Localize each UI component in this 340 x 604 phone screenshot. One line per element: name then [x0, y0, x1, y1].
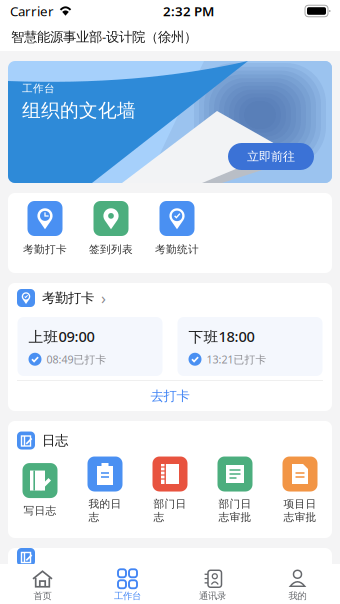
staticText: 工作台 — [114, 590, 141, 602]
button[interactable]: 签到列表 — [78, 201, 144, 256]
button[interactable]: 考勤打卡 — [8, 283, 332, 313]
staticText: 08:49已打卡 — [46, 352, 106, 366]
button[interactable]: 考勤统计 — [144, 201, 210, 256]
staticText: 我的 — [288, 590, 306, 602]
button[interactable]: 我的日志 — [72, 456, 137, 524]
staticText: 立即前往 — [247, 149, 295, 164]
staticText: 我的日志 — [88, 497, 121, 524]
staticText: 考勤统计 — [155, 243, 199, 256]
staticText: 考勤打卡 — [42, 290, 94, 306]
staticText: 签到列表 — [89, 243, 133, 256]
staticText: 上班09:00 — [28, 327, 94, 346]
staticText: 首页 — [33, 590, 51, 602]
staticText: 智慧能源事业部-设计院（徐州） — [11, 28, 197, 45]
button[interactable]: 通讯录 — [170, 566, 255, 602]
staticText: 工作台 — [22, 82, 55, 95]
button[interactable]: 考勤打卡 — [12, 201, 78, 256]
staticText: 项目日志审批 — [283, 497, 316, 524]
button[interactable]: 部门日志 — [137, 456, 202, 524]
staticText: 去打卡 — [150, 388, 189, 404]
staticText: › — [101, 287, 106, 309]
button[interactable]: 去打卡 — [8, 381, 332, 411]
button[interactable]: 部门日志审批 — [202, 456, 267, 524]
staticText: Carrier — [10, 2, 54, 20]
staticText: 13:21已打卡 — [206, 352, 266, 366]
button[interactable]: 首页 — [0, 566, 85, 602]
staticText: 2:32 PM — [163, 2, 214, 20]
staticText: 下班18:00 — [188, 327, 254, 346]
button[interactable]: 工作台 — [85, 566, 170, 602]
staticText: 考勤打卡 — [23, 243, 67, 256]
button[interactable]: 我的 — [255, 566, 340, 602]
button[interactable]: 写日志 — [7, 463, 72, 517]
staticText: 部门日志 — [153, 497, 186, 524]
button[interactable]: 立即前往 — [228, 143, 314, 170]
staticText: 日志 — [42, 432, 68, 449]
button[interactable]: 项目日志审批 — [267, 456, 332, 524]
staticText: 写日志 — [23, 504, 56, 517]
staticText: 通讯录 — [199, 590, 226, 602]
staticText: 组织的文化墙 — [22, 99, 136, 122]
staticText: 部门日志审批 — [218, 497, 251, 524]
